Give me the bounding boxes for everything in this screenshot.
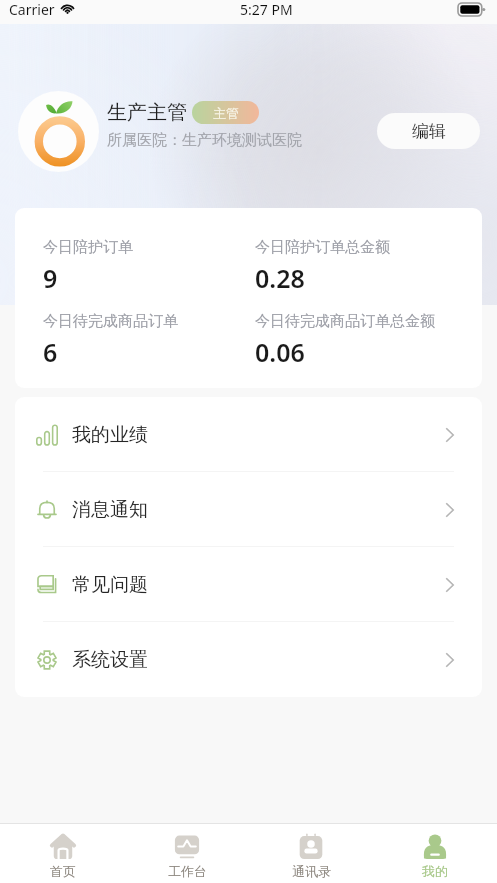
staticText: 我的业绩 [72,423,148,447]
staticText: 通讯录 [292,863,331,879]
staticText: 0.28 [255,261,305,295]
staticText: 主管 [213,105,239,121]
staticText: 9 [43,261,58,295]
button[interactable]: 消息通知 [15,472,482,547]
button[interactable]: 系统设置 [15,622,482,697]
button[interactable]: 通讯录 [249,824,373,883]
button[interactable]: 编辑 [377,113,480,149]
staticText: 工作台 [168,863,207,879]
button[interactable]: 我的业绩 [15,397,482,472]
button[interactable]: 常见问题 [15,547,482,622]
staticText: 5:27 PM [240,0,293,19]
staticText: 今日陪护订单总金额 [255,238,390,257]
button[interactable]: 工作台 [125,824,249,883]
staticText: 我的 [422,863,448,879]
staticText: 今日待完成商品订单总金额 [255,312,435,331]
staticText: 消息通知 [72,498,148,522]
staticText: 今日待完成商品订单 [43,312,178,331]
button[interactable]: 首页 [0,824,125,883]
staticText: 首页 [50,863,76,879]
button[interactable]: 我的 [373,824,497,883]
staticText: 编辑 [412,121,446,142]
staticText: 6 [43,335,58,369]
staticText: 系统设置 [72,648,148,672]
staticText: 所属医院：生产环境测试医院 [107,131,302,150]
staticText: 生产主管 [107,100,187,125]
staticText: Carrier [9,0,55,19]
staticText: 今日陪护订单 [43,238,133,257]
staticText: 常见问题 [72,573,148,597]
staticText: 0.06 [255,335,305,369]
